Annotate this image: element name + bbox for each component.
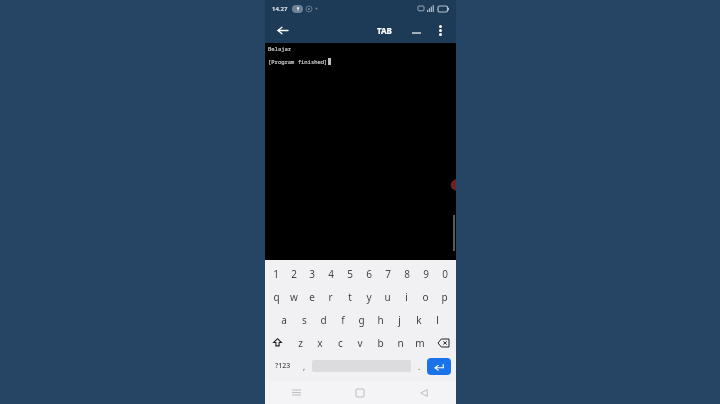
- button[interactable]: y: [359, 285, 378, 308]
- button[interactable]: m: [410, 331, 430, 354]
- staticText: 9: [423, 267, 429, 281]
- button[interactable]: 0: [435, 262, 454, 285]
- button[interactable]: a: [274, 308, 294, 331]
- button[interactable]: c: [330, 331, 350, 354]
- button[interactable]: Back: [392, 381, 456, 404]
- button[interactable]: j: [390, 308, 409, 331]
- staticText: 2: [291, 267, 297, 281]
- button[interactable]: 9: [416, 262, 435, 285]
- staticText: d: [320, 313, 327, 327]
- staticText: l: [436, 313, 439, 327]
- staticText: u: [384, 290, 391, 304]
- button[interactable]: 6: [359, 262, 378, 285]
- button[interactable]: More options: [432, 22, 448, 38]
- button[interactable]: Back: [273, 21, 291, 39]
- staticText: h: [377, 313, 384, 327]
- button[interactable]: f: [333, 308, 352, 331]
- button[interactable]: d: [314, 308, 333, 331]
- staticText: r: [328, 290, 333, 304]
- button[interactable]: 7: [378, 262, 397, 285]
- staticText: b: [377, 336, 384, 350]
- button[interactable]: u: [378, 285, 397, 308]
- staticText: g: [358, 313, 365, 327]
- button[interactable]: q: [267, 285, 285, 308]
- staticText: 0: [442, 267, 448, 281]
- button[interactable]: e: [303, 285, 321, 308]
- button[interactable]: 8: [397, 262, 416, 285]
- staticText: s: [302, 313, 307, 327]
- staticText: 5: [347, 267, 353, 281]
- button[interactable]: Backspace: [430, 331, 456, 354]
- staticText: m: [415, 336, 425, 350]
- staticText: 6: [366, 267, 372, 281]
- button[interactable]: TAB: [373, 22, 396, 39]
- button[interactable]: Recents: [265, 381, 328, 404]
- staticText: w: [290, 290, 298, 304]
- button[interactable]: Minimize: [408, 22, 424, 38]
- button[interactable]: n: [390, 331, 410, 354]
- staticText: .: [418, 361, 421, 372]
- staticText: t: [348, 290, 352, 304]
- button[interactable]: o: [416, 285, 435, 308]
- button[interactable]: 5: [340, 262, 359, 285]
- staticText: p: [441, 290, 448, 304]
- button[interactable]: ?123: [270, 354, 296, 378]
- staticText: 14.27: [272, 5, 288, 13]
- button[interactable]: Shift: [265, 331, 290, 354]
- staticText: x: [317, 336, 323, 350]
- button[interactable]: ,: [296, 354, 312, 378]
- button[interactable]: g: [352, 308, 371, 331]
- button[interactable]: l: [428, 308, 447, 331]
- staticText: c: [338, 336, 343, 350]
- staticText: ,: [303, 361, 306, 372]
- button[interactable]: b: [370, 331, 390, 354]
- staticText: z: [298, 336, 303, 350]
- button[interactable]: i: [397, 285, 416, 308]
- button[interactable]: k: [409, 308, 428, 331]
- staticText: 7: [385, 267, 391, 281]
- button[interactable]: p: [435, 285, 454, 308]
- button[interactable]: 1: [267, 262, 285, 285]
- staticText: v: [357, 336, 363, 350]
- staticText: ?123: [275, 361, 291, 371]
- button[interactable]: x: [310, 331, 330, 354]
- staticText: 4: [328, 267, 334, 281]
- staticText: e: [309, 290, 315, 304]
- button[interactable]: v: [350, 331, 370, 354]
- button[interactable]: h: [371, 308, 390, 331]
- button[interactable]: .: [411, 354, 427, 378]
- button[interactable]: z: [290, 331, 310, 354]
- button[interactable]: 2: [285, 262, 303, 285]
- button[interactable]: w: [285, 285, 303, 308]
- button[interactable]: Enter: [427, 358, 451, 375]
- button[interactable]: 3: [303, 262, 321, 285]
- staticText: k: [416, 313, 422, 327]
- staticText: 1: [273, 267, 279, 281]
- staticText: TAB: [377, 25, 392, 36]
- staticText: f: [341, 313, 345, 327]
- staticText: 8: [404, 267, 410, 281]
- staticText: q: [273, 290, 280, 304]
- button[interactable]: t: [340, 285, 359, 308]
- staticText: Belajar: [268, 45, 292, 52]
- staticText: j: [398, 313, 401, 327]
- staticText: i: [405, 290, 408, 304]
- staticText: 3: [309, 267, 315, 281]
- staticText: n: [397, 336, 404, 350]
- staticText: [Program finished]: [268, 58, 328, 65]
- button[interactable]: Home: [328, 381, 392, 404]
- button[interactable]: 4: [321, 262, 340, 285]
- staticText: o: [422, 290, 429, 304]
- staticText: a: [281, 313, 287, 327]
- button[interactable]: s: [294, 308, 314, 331]
- button[interactable]: r: [321, 285, 340, 308]
- staticText: y: [366, 290, 372, 304]
